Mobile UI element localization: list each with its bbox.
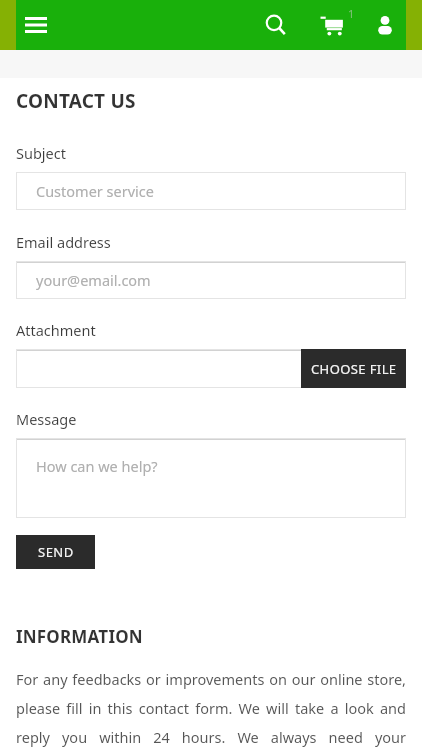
button[interactable]: Cart, 1 item: [310, 2, 356, 48]
staticText: CONTACT US: [16, 88, 136, 114]
staticText: For any feedbacks or improvements on our…: [16, 669, 406, 750]
staticText: your@email.com: [36, 270, 151, 290]
button[interactable]: your@email.com: [16, 261, 406, 299]
staticText: 1: [348, 6, 355, 21]
button[interactable]: How can we help?: [16, 438, 406, 518]
button[interactable]: SEND: [16, 535, 95, 569]
staticText: Subject: [16, 143, 66, 163]
staticText: Email address: [16, 232, 111, 252]
button[interactable]: Menu: [16, 5, 56, 45]
staticText: SEND: [38, 543, 74, 561]
button[interactable]: CHOOSE FILE: [301, 349, 406, 388]
button[interactable]: Account: [364, 4, 406, 46]
staticText: INFORMATION: [16, 625, 143, 648]
button[interactable]: Customer service: [16, 172, 406, 210]
staticText: How can we help?: [36, 456, 158, 476]
button[interactable]: Search: [254, 3, 298, 47]
staticText: Message: [16, 409, 77, 429]
staticText: CHOOSE FILE: [311, 360, 397, 378]
staticText: Attachment: [16, 320, 96, 340]
staticText: Customer service: [36, 181, 154, 201]
button[interactable]: [16, 349, 406, 388]
